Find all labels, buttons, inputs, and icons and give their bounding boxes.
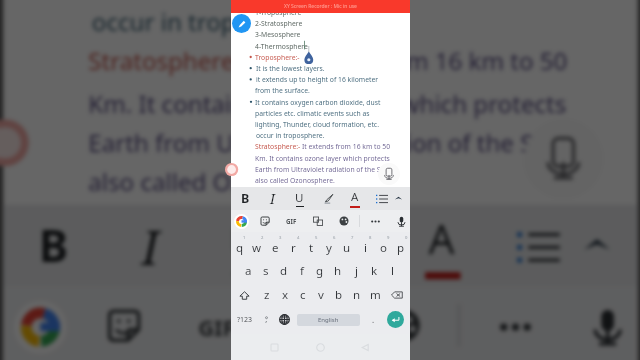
button[interactable]: Collapse toolbar [553, 205, 638, 286]
staticText: I [141, 215, 159, 279]
button[interactable]: GIF [173, 286, 258, 360]
button[interactable]: g [311, 259, 329, 283]
staticText: w [252, 240, 262, 256]
button[interactable]: Change language [276, 307, 292, 332]
button[interactable]: Bullet list [496, 205, 581, 286]
button[interactable]: . [365, 307, 381, 332]
staticText: Earth from Ultraviolet radiation of the … [88, 127, 535, 159]
button[interactable]: Bullet list [370, 187, 394, 210]
button[interactable]: h [329, 259, 347, 283]
button[interactable]: f [293, 259, 311, 283]
staticText: 2 [261, 235, 264, 241]
staticText: q [236, 240, 244, 256]
button[interactable]: k [365, 259, 383, 283]
button[interactable]: Bold [233, 187, 257, 210]
button[interactable]: 0 [392, 235, 410, 259]
button[interactable]: v [312, 283, 330, 307]
button[interactable]: Google search [229, 210, 253, 232]
button[interactable]: 6 [320, 235, 338, 259]
button[interactable]: x [276, 283, 294, 307]
button[interactable]: Text colour [343, 187, 367, 210]
button[interactable]: English [297, 314, 360, 326]
button[interactable]: Voice typing [389, 210, 413, 232]
button[interactable]: c [294, 283, 312, 307]
button[interactable]: 2 [248, 235, 266, 259]
staticText: I [270, 190, 275, 208]
staticText: U [295, 190, 304, 206]
button[interactable]: d [275, 259, 293, 283]
button[interactable]: 3 [266, 235, 284, 259]
staticText: e [272, 240, 279, 256]
staticText: g [316, 263, 324, 279]
button[interactable]: l [383, 259, 401, 283]
staticText: 1 [243, 235, 246, 241]
button[interactable]: Highlight [316, 187, 340, 210]
staticText: 0 [405, 235, 408, 241]
staticText: It contains oxygen carbon dioxide, dust [255, 98, 381, 107]
button[interactable]: Enter [387, 311, 404, 328]
staticText: ?123 [237, 315, 253, 325]
button[interactable]: Shift [231, 283, 258, 307]
button[interactable]: z [258, 283, 276, 307]
staticText: GIF [198, 311, 237, 340]
button[interactable]: Themes [361, 286, 446, 360]
button[interactable]: Text colour [400, 205, 485, 286]
button[interactable]: Edit [232, 14, 251, 33]
button[interactable]: Italic [260, 187, 284, 210]
button[interactable]: 9 [374, 235, 392, 259]
button[interactable]: 4 [284, 235, 302, 259]
button[interactable]: b [330, 283, 348, 307]
button[interactable]: Highlight [304, 205, 390, 286]
button[interactable]: Underline [287, 187, 311, 210]
button[interactable]: Google search [0, 286, 81, 360]
staticText: o [380, 240, 387, 256]
staticText: v [318, 287, 324, 303]
button[interactable]: GIF [279, 210, 303, 232]
button[interactable]: Backspace [384, 283, 410, 307]
staticText: Stratosphere:- It extends from 16 km to … [88, 45, 570, 77]
button[interactable]: n [348, 283, 366, 307]
staticText: t [309, 240, 314, 256]
button[interactable]: 7 [338, 235, 356, 259]
button[interactable]: Emoji [258, 307, 274, 332]
staticText: b [335, 287, 343, 303]
staticText: occur in troposphere. [256, 131, 325, 140]
staticText: lighting, Thunder, cloud formation, etc. [255, 120, 379, 129]
button[interactable]: Stickers [253, 210, 277, 232]
button[interactable]: ?123 [235, 307, 255, 332]
button[interactable]: Voice typing [563, 286, 640, 360]
staticText: Stratosphere:- It extends from 16 km to … [255, 142, 391, 151]
staticText: 4-Thermosphere [255, 42, 308, 51]
staticText: English [318, 316, 339, 324]
button[interactable]: 5 [302, 235, 320, 259]
staticText: 8 [369, 235, 372, 241]
button[interactable]: Collapse toolbar [386, 187, 410, 210]
button[interactable]: 1 [231, 235, 248, 259]
button[interactable]: Themes [332, 210, 356, 232]
staticText: Troposphere:- [255, 53, 300, 62]
staticText: k [371, 263, 378, 279]
button[interactable]: More options [471, 286, 556, 360]
button[interactable]: s [257, 259, 275, 283]
button[interactable]: Stickers [81, 286, 166, 360]
button[interactable]: Italic [106, 205, 191, 286]
staticText: 4 [297, 235, 300, 241]
button[interactable]: Underline [202, 205, 287, 286]
button[interactable]: Bold [10, 205, 95, 286]
button[interactable]: a [239, 259, 257, 283]
button[interactable]: Voice input [524, 120, 602, 198]
button[interactable]: j [347, 259, 365, 283]
button[interactable]: Voice input [378, 163, 400, 185]
staticText: n [353, 287, 361, 303]
staticText: 5 [315, 235, 318, 241]
button[interactable]: More options [363, 210, 387, 232]
button[interactable]: 8 [356, 235, 374, 259]
button[interactable]: m [366, 283, 384, 307]
staticText: 1-Troposphere [255, 8, 302, 17]
button[interactable]: Translate [269, 286, 354, 360]
staticText: 9 [387, 235, 390, 241]
button[interactable]: Translate [306, 210, 330, 232]
